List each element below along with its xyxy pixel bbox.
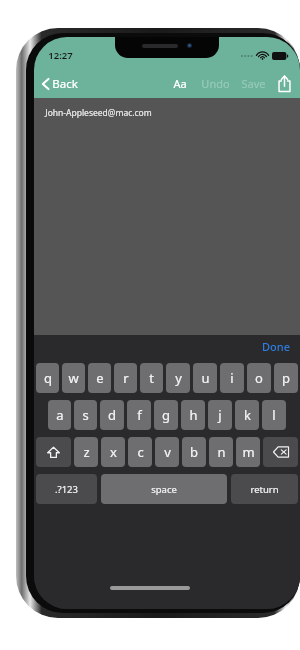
staticText: 12:27 — [48, 49, 73, 62]
staticText: h — [189, 406, 198, 424]
button[interactable]: Key — [263, 437, 298, 467]
button[interactable]: u — [193, 363, 217, 393]
button[interactable]: Back — [34, 72, 86, 96]
staticText: p — [282, 369, 290, 387]
staticText: g — [162, 406, 170, 424]
button[interactable]: c — [128, 437, 152, 467]
button[interactable]: w — [62, 363, 85, 393]
button[interactable]: n — [209, 437, 233, 467]
button[interactable]: b — [182, 437, 206, 467]
staticText: .?123 — [55, 483, 78, 496]
staticText: Undo — [201, 76, 230, 91]
button[interactable]: l — [262, 400, 286, 430]
button[interactable]: o — [247, 363, 271, 393]
staticText: u — [201, 369, 210, 387]
staticText: o — [255, 369, 263, 387]
button[interactable]: f — [127, 400, 151, 430]
staticText: x — [110, 443, 117, 461]
staticText: Back — [52, 76, 78, 92]
button[interactable]: h — [181, 400, 205, 430]
staticText: v — [164, 443, 171, 461]
button[interactable]: g — [154, 400, 178, 430]
button[interactable]: e — [88, 363, 111, 393]
staticText: n — [217, 443, 226, 461]
button[interactable]: d — [100, 400, 124, 430]
staticText: b — [190, 443, 198, 461]
staticText: c — [137, 443, 144, 461]
button[interactable]: p — [274, 363, 298, 393]
staticText: y — [175, 369, 182, 387]
staticText: return — [250, 483, 279, 496]
staticText: l — [272, 406, 276, 424]
button[interactable]: x — [101, 437, 125, 467]
staticText: a — [56, 406, 64, 424]
staticText: f — [137, 406, 142, 424]
staticText: m — [242, 443, 255, 461]
button[interactable]: k — [235, 400, 259, 430]
staticText: i — [230, 369, 234, 387]
button[interactable]: Key — [36, 437, 71, 467]
staticText: Aa — [173, 76, 187, 91]
staticText: w — [68, 369, 79, 387]
button[interactable]: Share — [275, 73, 294, 94]
button[interactable]: s — [74, 400, 97, 430]
staticText: space — [151, 483, 177, 496]
staticText: z — [83, 443, 90, 461]
button[interactable]: j — [208, 400, 232, 430]
staticText: e — [96, 369, 104, 387]
staticText: d — [108, 406, 116, 424]
button[interactable]: r — [114, 363, 137, 393]
button[interactable]: t — [140, 363, 163, 393]
button[interactable]: Save — [237, 72, 270, 95]
staticText: j — [218, 406, 222, 424]
button[interactable]: Done — [252, 336, 300, 357]
button[interactable]: z — [74, 437, 98, 467]
staticText: r — [123, 369, 129, 387]
staticText: t — [149, 369, 154, 387]
button[interactable]: Key — [231, 474, 298, 504]
staticText: Done — [262, 339, 290, 354]
button[interactable]: y — [166, 363, 190, 393]
button[interactable]: a — [48, 400, 71, 430]
button[interactable]: Undo — [197, 72, 234, 95]
button[interactable]: Key — [101, 474, 227, 504]
staticText: John-Appleseed@mac.com — [45, 107, 152, 119]
button[interactable]: m — [236, 437, 260, 467]
staticText: k — [244, 406, 251, 424]
button[interactable]: i — [220, 363, 244, 393]
staticText: s — [82, 406, 89, 424]
button[interactable]: Aa — [167, 72, 193, 95]
button[interactable]: Key — [36, 474, 97, 504]
button[interactable]: v — [155, 437, 179, 467]
staticText: Save — [241, 76, 266, 91]
button[interactable]: q — [36, 363, 59, 393]
staticText: q — [44, 369, 52, 387]
